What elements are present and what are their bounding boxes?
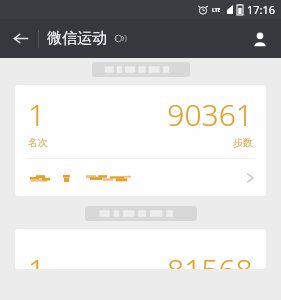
staticText: 81568 bbox=[167, 249, 253, 269]
button[interactable] bbox=[15, 159, 266, 196]
button[interactable]: Back bbox=[0, 19, 40, 58]
staticText: 名次 bbox=[28, 136, 48, 149]
staticText: 步数 bbox=[233, 136, 253, 149]
button[interactable]: Profile bbox=[239, 19, 281, 58]
staticText: 1 bbox=[28, 94, 46, 135]
staticText: 1 bbox=[28, 249, 46, 269]
staticText: 90361 bbox=[167, 94, 253, 135]
staticText: 微信运动 bbox=[47, 29, 107, 48]
staticText: LTE bbox=[212, 7, 221, 14]
staticText: 17:16 bbox=[247, 2, 276, 17]
